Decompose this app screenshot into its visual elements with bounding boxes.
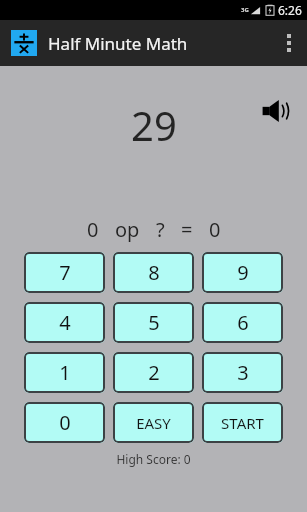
staticText: 2: [148, 359, 160, 386]
staticText: 29: [131, 98, 177, 152]
staticText: 5: [148, 309, 160, 336]
button[interactable]: 6: [202, 302, 283, 343]
button[interactable]: 5: [113, 302, 194, 343]
button[interactable]: 9: [202, 252, 283, 293]
staticText: 3G: [241, 6, 249, 14]
staticText: 7: [59, 259, 71, 286]
staticText: 9: [237, 259, 249, 286]
staticText: Half Minute Math: [48, 32, 188, 55]
staticText: op: [115, 216, 140, 243]
staticText: 6:26: [278, 2, 302, 18]
button[interactable]: More options: [271, 20, 307, 66]
button[interactable]: Toggle sound: [257, 91, 297, 131]
staticText: High Score: 0: [116, 451, 191, 467]
staticText: START: [221, 413, 264, 433]
staticText: 6: [237, 309, 249, 336]
button[interactable]: 4: [24, 302, 105, 343]
staticText: 1: [59, 359, 71, 386]
button[interactable]: EASY: [113, 402, 194, 443]
staticText: ?: [156, 216, 165, 243]
button[interactable]: 2: [113, 352, 194, 393]
staticText: 8: [148, 259, 160, 286]
staticText: EASY: [136, 413, 171, 433]
staticText: 4: [59, 309, 71, 336]
button[interactable]: START: [202, 402, 283, 443]
button[interactable]: 0: [24, 402, 105, 443]
button[interactable]: 8: [113, 252, 194, 293]
button[interactable]: 3: [202, 352, 283, 393]
staticText: 0: [59, 409, 71, 436]
staticText: 3: [237, 359, 249, 386]
staticText: 0: [209, 216, 221, 243]
button[interactable]: 1: [24, 352, 105, 393]
button[interactable]: 7: [24, 252, 105, 293]
staticText: =: [181, 216, 193, 243]
staticText: 0: [87, 216, 99, 243]
